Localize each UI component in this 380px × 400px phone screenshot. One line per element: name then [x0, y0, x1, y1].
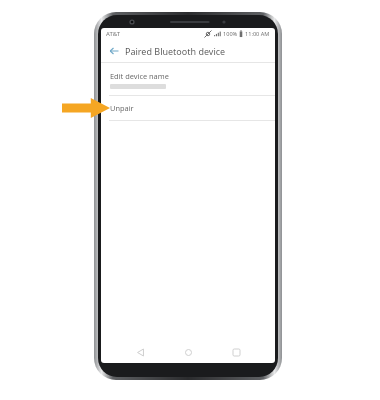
button[interactable]: Edit device name [101, 63, 275, 95]
staticText: 11:00 AM [245, 30, 270, 38]
other: Pointer to Unpair [62, 98, 110, 118]
staticText: 100% [223, 30, 238, 38]
staticText: Unpair [110, 103, 134, 113]
button[interactable]: Recent apps [227, 343, 245, 361]
button[interactable]: Back [131, 343, 149, 361]
button[interactable]: Home [179, 343, 197, 361]
staticText: Edit device name [110, 71, 169, 81]
staticText: AT&T [106, 30, 120, 38]
staticText: Paired Bluetooth device [125, 45, 226, 57]
button[interactable]: Unpair [101, 96, 275, 120]
button[interactable]: Back [107, 44, 121, 58]
